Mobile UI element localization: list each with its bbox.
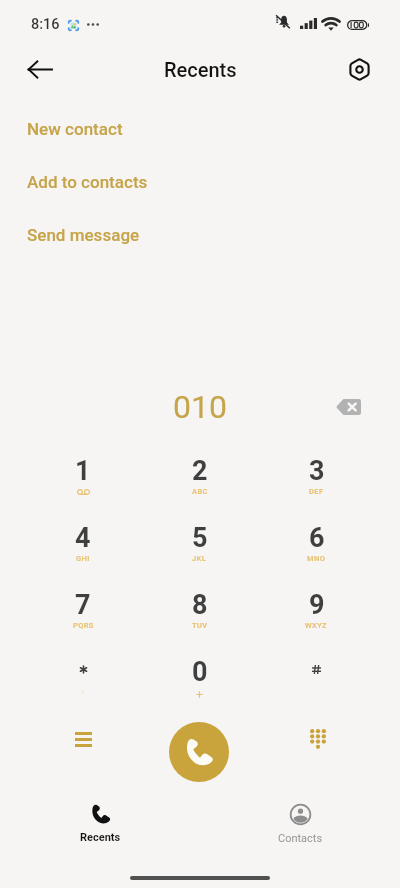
button[interactable]: [258, 638, 375, 705]
staticText: 5: [192, 522, 208, 554]
staticText: 8: [192, 589, 208, 621]
staticText: GHI: [76, 554, 90, 563]
button[interactable]: 7: [25, 571, 141, 638]
staticText: 9: [309, 589, 325, 621]
staticText: 8:16: [31, 16, 60, 33]
staticText: Recents: [164, 58, 237, 81]
button[interactable]: 4: [25, 504, 141, 571]
staticText: PQRS: [73, 621, 94, 630]
button[interactable]: 1: [25, 437, 141, 504]
staticText: 1: [75, 455, 91, 487]
button[interactable]: 0: [141, 638, 258, 705]
button[interactable]: Recents: [0, 796, 200, 852]
button[interactable]: Add to contacts: [0, 155, 400, 208]
staticText: 6: [309, 522, 325, 554]
button[interactable]: 2: [141, 437, 258, 504]
staticText: MNO: [307, 554, 326, 563]
staticText: 3: [309, 455, 325, 487]
staticText: 0: [192, 656, 208, 688]
button[interactable]: Call log: [59, 715, 107, 763]
button[interactable]: New contact: [0, 102, 400, 155]
button[interactable]: 6: [258, 504, 375, 571]
button[interactable]: 3: [258, 437, 375, 504]
staticText: WXYZ: [305, 621, 328, 630]
staticText: Recents: [80, 831, 121, 844]
staticText: Add to contacts: [27, 172, 148, 192]
button[interactable]: 9: [258, 571, 375, 638]
staticText: 010: [173, 388, 227, 426]
button[interactable]: Backspace: [328, 387, 368, 427]
button[interactable]: ,: [25, 638, 141, 705]
staticText: JKL: [192, 554, 207, 563]
button[interactable]: Send message: [0, 208, 400, 261]
button[interactable]: Back: [16, 47, 64, 92]
button[interactable]: Settings: [335, 47, 383, 92]
staticText: Contacts: [278, 832, 323, 845]
button[interactable]: Dialpad: [294, 715, 342, 763]
staticText: 4: [75, 522, 91, 554]
staticText: 2: [192, 455, 208, 487]
staticText: ,: [82, 683, 84, 695]
button[interactable]: 5: [141, 504, 258, 571]
staticText: Send message: [27, 225, 140, 245]
staticText: TUV: [192, 621, 208, 630]
button[interactable]: Call: [169, 722, 229, 782]
button[interactable]: 8: [141, 571, 258, 638]
staticText: DEF: [309, 487, 324, 496]
staticText: 7: [75, 589, 91, 621]
button[interactable]: Contacts: [200, 796, 400, 852]
staticText: ABC: [192, 487, 208, 496]
staticText: New contact: [27, 119, 123, 139]
